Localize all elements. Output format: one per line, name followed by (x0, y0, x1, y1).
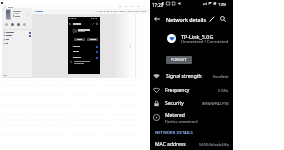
button[interactable] (3, 34, 32, 37)
button[interactable] (68, 44, 100, 49)
button[interactable]: Window control (129, 4, 135, 8)
button[interactable]: Toolbar action (126, 10, 132, 12)
button[interactable]: Toolbar action (111, 10, 117, 12)
button[interactable]: Window control (135, 4, 141, 8)
button[interactable]: Toolbar action (118, 10, 124, 12)
button[interactable]: Device action (17, 23, 20, 26)
staticText: WPA/WPA2-PSK (202, 101, 229, 106)
button[interactable]: Device action (5, 23, 8, 26)
staticText: Signal strength (166, 73, 213, 80)
button[interactable]: Search (217, 13, 229, 25)
staticText: FORGET (171, 57, 187, 63)
staticText: 5 GHz (218, 88, 229, 93)
button[interactable] (68, 55, 100, 60)
button[interactable]: Back (151, 13, 163, 25)
button[interactable]: Rename (74, 38, 85, 41)
button[interactable] (3, 38, 32, 41)
staticText: 54:95:0d:aa:b4:8a (199, 142, 229, 147)
button[interactable]: Toolbar action (97, 10, 103, 12)
staticText: Frequency (165, 87, 218, 94)
button[interactable]: Signal strength (150, 70, 233, 83)
button[interactable]: Toolbar action (104, 10, 110, 12)
button[interactable]: Window control (123, 4, 129, 8)
button[interactable] (68, 49, 100, 54)
button[interactable]: Metered (150, 110, 233, 125)
staticText: Excellent (213, 74, 229, 79)
staticText: TP-Link_5.0G (181, 33, 214, 40)
button[interactable]: FORGET (166, 56, 192, 64)
button[interactable]: MAC address (150, 139, 233, 150)
button[interactable]: Device action (11, 23, 14, 26)
staticText: MAC address (155, 141, 199, 148)
staticText: Unmetered / Connected (181, 39, 229, 45)
staticText: Find as unmetered (165, 119, 198, 124)
button[interactable]: Edit (206, 13, 218, 25)
button[interactable] (3, 31, 32, 34)
staticText: 17:20 (152, 2, 164, 8)
button[interactable]: Toolbar action (140, 10, 146, 12)
button[interactable]: Device action (23, 23, 26, 26)
button[interactable] (3, 42, 32, 45)
button[interactable]: Window control (117, 4, 123, 8)
button[interactable]: Frequency (150, 84, 233, 97)
staticText: Security (165, 100, 202, 107)
staticText: Network details (166, 16, 207, 23)
button[interactable]: Disconnect (87, 38, 98, 41)
button[interactable]: Toolbar action (133, 10, 139, 12)
staticText: NETWORK DETAILS (155, 130, 193, 136)
button[interactable]: Security (150, 97, 233, 110)
staticText: 13% (218, 2, 227, 8)
staticText: Metered (165, 112, 185, 119)
